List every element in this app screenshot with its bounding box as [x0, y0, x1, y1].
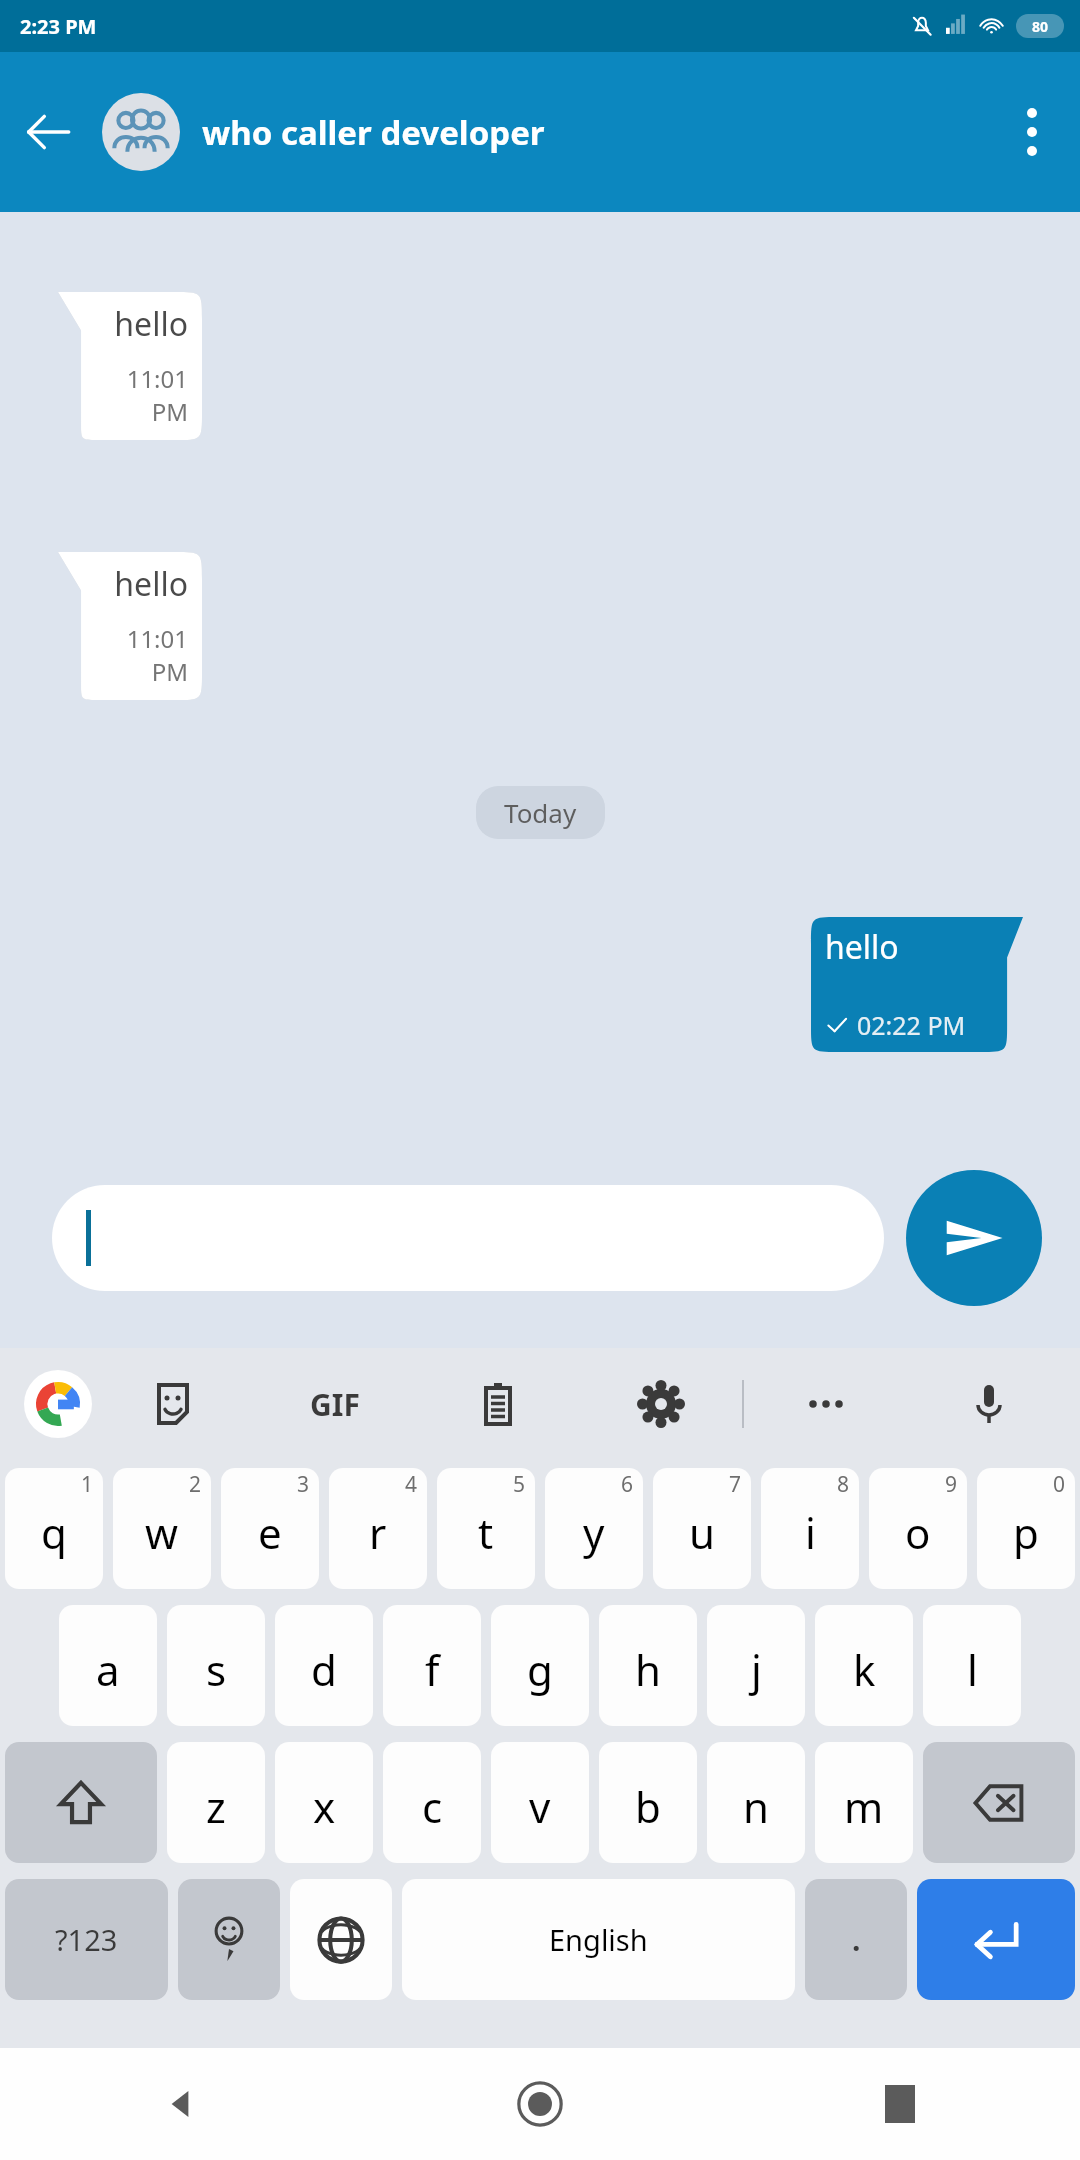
button[interactable]: 4 [329, 1468, 427, 1589]
staticText: f [425, 1641, 440, 1698]
button[interactable]: Recent apps [720, 2048, 1080, 2160]
staticText: 0 [1053, 1470, 1066, 1499]
staticText: y [583, 1504, 605, 1561]
button[interactable]: Voice input [907, 1348, 1070, 1460]
button[interactable]: k [815, 1605, 913, 1726]
button[interactable]: Shift [5, 1742, 157, 1863]
staticText: o [905, 1504, 931, 1561]
button[interactable]: 9 [869, 1468, 967, 1589]
staticText: e [258, 1504, 282, 1561]
button[interactable]: Settings [579, 1348, 742, 1460]
button[interactable] [290, 1879, 392, 2000]
button[interactable] [52, 1185, 884, 1291]
button[interactable]: l [923, 1605, 1021, 1726]
button[interactable]: f [383, 1605, 481, 1726]
button[interactable]: s [167, 1605, 265, 1726]
button[interactable]: GIF [254, 1348, 416, 1460]
button[interactable]: d [275, 1605, 373, 1726]
staticText: k [853, 1641, 876, 1698]
button[interactable]: Send [906, 1170, 1042, 1306]
staticText: 2 [189, 1470, 202, 1499]
button[interactable] [178, 1879, 280, 2000]
button[interactable]: . [805, 1879, 907, 2000]
button[interactable]: More options [984, 84, 1080, 180]
staticText: 11:01 PM [88, 362, 188, 428]
staticText: r [369, 1504, 387, 1561]
staticText: 02:22 PM [857, 1008, 966, 1042]
staticText: h [635, 1641, 661, 1698]
staticText: 80 [1032, 17, 1049, 36]
staticText: j [751, 1641, 762, 1698]
button[interactable]: 8 [761, 1468, 859, 1589]
button[interactable]: 6 [545, 1468, 643, 1589]
button[interactable]: j [707, 1605, 805, 1726]
staticText: x [313, 1778, 336, 1835]
staticText: 2:23 PM [20, 13, 97, 40]
button[interactable]: 3 [221, 1468, 319, 1589]
button[interactable]: Back [0, 84, 96, 180]
button[interactable]: Google [24, 1370, 92, 1438]
button[interactable]: a [59, 1605, 157, 1726]
staticText: p [1013, 1504, 1039, 1561]
button[interactable]: m [815, 1742, 913, 1863]
button[interactable]: English [402, 1879, 795, 2000]
staticText: GIF [310, 1384, 360, 1425]
staticText: l [967, 1641, 978, 1698]
button[interactable]: n [707, 1742, 805, 1863]
staticText: g [527, 1641, 553, 1698]
staticText: b [635, 1778, 661, 1835]
button[interactable]: 7 [653, 1468, 751, 1589]
button[interactable]: g [491, 1605, 589, 1726]
staticText: 5 [513, 1470, 526, 1499]
staticText: 9 [945, 1470, 958, 1499]
button[interactable]: b [599, 1742, 697, 1863]
staticText: a [96, 1641, 120, 1698]
staticText: 3 [297, 1470, 310, 1499]
staticText: n [743, 1778, 769, 1835]
staticText: 4 [405, 1470, 418, 1499]
button[interactable]: v [491, 1742, 589, 1863]
button[interactable]: c [383, 1742, 481, 1863]
staticText: i [805, 1504, 816, 1561]
staticText: c [422, 1778, 443, 1835]
staticText: t [478, 1504, 494, 1561]
button[interactable]: Backspace [923, 1742, 1075, 1863]
staticText: 7 [729, 1470, 742, 1499]
button[interactable]: z [167, 1742, 265, 1863]
button[interactable]: 5 [437, 1468, 535, 1589]
staticText: who caller developer [202, 110, 984, 155]
button[interactable]: More [744, 1348, 907, 1460]
staticText: 8 [837, 1470, 850, 1499]
button[interactable]: ?123 [5, 1879, 168, 2000]
staticText: English [549, 1920, 648, 1959]
staticText: q [41, 1504, 67, 1561]
button[interactable]: 1 [5, 1468, 103, 1589]
button[interactable]: h [599, 1605, 697, 1726]
button[interactable]: 2 [113, 1468, 211, 1589]
staticText: w [145, 1504, 179, 1561]
button[interactable]: x [275, 1742, 373, 1863]
staticText: m [844, 1778, 884, 1835]
staticText: z [206, 1778, 226, 1835]
staticText: 6 [621, 1470, 634, 1499]
staticText: u [689, 1504, 715, 1561]
staticText: 11:01 PM [88, 622, 188, 688]
button[interactable]: 0 [977, 1468, 1075, 1589]
button[interactable]: Back [0, 2048, 360, 2160]
staticText: Today [504, 795, 577, 830]
button[interactable]: Stickers [92, 1348, 254, 1460]
button[interactable] [917, 1879, 1075, 2000]
staticText: hello [825, 925, 899, 969]
staticText: ?123 [55, 1920, 118, 1959]
staticText: v [529, 1778, 551, 1835]
staticText: hello [88, 562, 188, 606]
staticText: d [311, 1641, 337, 1698]
staticText: s [206, 1641, 227, 1698]
button[interactable]: Home [360, 2048, 720, 2160]
button[interactable]: Contact photo [102, 93, 180, 171]
button[interactable]: Clipboard [416, 1348, 579, 1460]
staticText: hello [88, 302, 188, 346]
staticText: . [852, 1919, 861, 1960]
staticText: 1 [81, 1470, 94, 1499]
